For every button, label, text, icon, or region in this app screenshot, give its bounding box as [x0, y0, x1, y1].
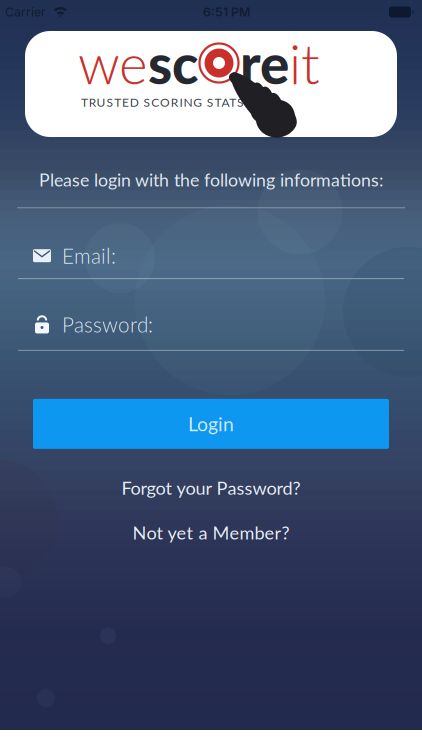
- staticText: Carrier: [5, 5, 46, 19]
- staticText: Email:: [62, 243, 116, 268]
- staticText: PM: [231, 5, 250, 19]
- button[interactable]: Not yet a Member?: [132, 522, 289, 543]
- staticText: Login: [188, 412, 234, 435]
- staticText: it: [289, 30, 320, 96]
- staticText: Please login with the following informat…: [39, 169, 383, 190]
- staticText: we: [78, 30, 148, 96]
- button[interactable]: Forgot your Password?: [121, 477, 300, 499]
- staticText: Password:: [62, 312, 153, 337]
- staticText: 6:51: [203, 5, 228, 19]
- staticText: sc: [148, 30, 198, 96]
- button[interactable]: Login: [33, 399, 389, 449]
- staticText: Not yet a Member?: [132, 522, 289, 543]
- staticText: re: [240, 30, 289, 96]
- staticText: Forgot your Password?: [121, 477, 300, 499]
- staticText: TRUSTED SCORING STATS: [81, 95, 244, 109]
